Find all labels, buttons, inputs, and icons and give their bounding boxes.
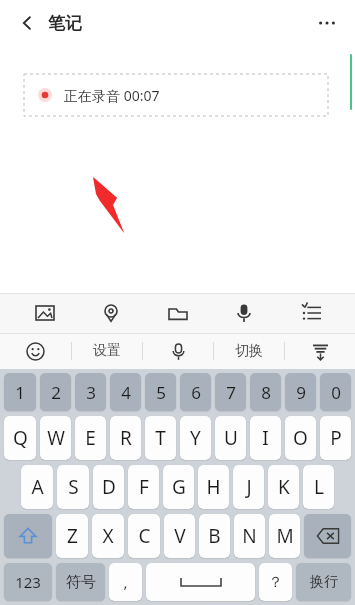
- staticText: 5: [156, 381, 166, 404]
- button[interactable]: I: [250, 416, 281, 460]
- button[interactable]: 符号: [56, 563, 105, 601]
- staticText: 123: [15, 572, 41, 592]
- button[interactable]: J: [233, 465, 264, 509]
- button[interactable]: 切换: [214, 333, 284, 369]
- button[interactable]: K: [268, 465, 299, 509]
- staticText: N: [242, 523, 257, 549]
- staticText: 9: [296, 381, 306, 404]
- staticText: Q: [13, 425, 28, 451]
- button[interactable]: E: [75, 416, 106, 460]
- button[interactable]: 设置: [72, 333, 142, 369]
- button[interactable]: 7: [215, 373, 246, 411]
- button[interactable]: L: [303, 465, 334, 509]
- button[interactable]: M: [269, 514, 300, 558]
- staticText: D: [102, 474, 116, 500]
- button[interactable]: 3: [75, 373, 106, 411]
- button[interactable]: H: [198, 465, 229, 509]
- button[interactable]: 0: [320, 373, 351, 411]
- staticText: V: [174, 523, 186, 549]
- button[interactable]: P: [320, 416, 351, 460]
- button[interactable]: ,: [109, 563, 142, 601]
- button[interactable]: Voice input: [143, 333, 213, 369]
- staticText: I: [262, 425, 269, 451]
- staticText: F: [139, 474, 149, 500]
- button[interactable]: Voice recording: [222, 293, 266, 333]
- button[interactable]: 2: [40, 373, 71, 411]
- staticText: 0: [331, 381, 341, 404]
- staticText: C: [138, 523, 151, 549]
- staticText: U: [224, 425, 238, 451]
- button[interactable]: N: [234, 514, 265, 558]
- button[interactable]: 5: [145, 373, 176, 411]
- button[interactable]: X: [92, 514, 124, 558]
- staticText: H: [206, 474, 221, 500]
- button[interactable]: Backspace: [304, 514, 351, 558]
- button[interactable]: F: [128, 465, 159, 509]
- button[interactable]: W: [40, 416, 71, 460]
- staticText: ？: [268, 573, 283, 592]
- button[interactable]: U: [215, 416, 246, 460]
- button[interactable]: 正在录音 00:07: [24, 74, 328, 116]
- button[interactable]: A: [21, 465, 53, 509]
- staticText: 8: [261, 381, 271, 404]
- button[interactable]: S: [57, 465, 89, 509]
- staticText: M: [276, 523, 294, 549]
- button[interactable]: Space: [146, 563, 255, 601]
- staticText: J: [246, 474, 252, 500]
- button[interactable]: Z: [56, 514, 88, 558]
- button[interactable]: 换行: [296, 563, 351, 601]
- staticText: R: [120, 425, 132, 451]
- button[interactable]: Location: [89, 293, 133, 333]
- button[interactable]: Emoji: [0, 333, 71, 369]
- button[interactable]: Files: [156, 293, 200, 333]
- button[interactable]: C: [128, 514, 160, 558]
- staticText: 设置: [93, 342, 121, 360]
- button[interactable]: More options: [309, 5, 345, 41]
- button[interactable]: B: [199, 514, 230, 558]
- button[interactable]: Checklist: [289, 293, 333, 333]
- staticText: ,: [123, 572, 128, 592]
- staticText: A: [31, 474, 44, 500]
- staticText: K: [278, 474, 290, 500]
- staticText: Z: [67, 523, 78, 549]
- button[interactable]: Q: [4, 416, 36, 460]
- staticText: 2: [51, 381, 61, 404]
- button[interactable]: V: [164, 514, 195, 558]
- button[interactable]: Back: [10, 6, 44, 40]
- staticText: Y: [190, 425, 201, 451]
- staticText: P: [330, 425, 342, 451]
- staticText: 4: [121, 381, 131, 404]
- staticText: E: [85, 425, 96, 451]
- staticText: L: [314, 474, 324, 500]
- button[interactable]: ？: [259, 563, 292, 601]
- staticText: 切换: [235, 342, 263, 360]
- staticText: 符号: [66, 573, 96, 592]
- button[interactable]: 6: [180, 373, 211, 411]
- button[interactable]: Insert image: [23, 293, 67, 333]
- button[interactable]: G: [163, 465, 194, 509]
- staticText: 7: [226, 381, 236, 404]
- button[interactable]: R: [110, 416, 141, 460]
- staticText: G: [172, 474, 186, 500]
- button[interactable]: 9: [285, 373, 316, 411]
- button[interactable]: Shift: [4, 514, 52, 558]
- staticText: 6: [191, 381, 201, 404]
- staticText: 1: [15, 381, 25, 404]
- staticText: X: [102, 523, 114, 549]
- button[interactable]: O: [285, 416, 316, 460]
- button[interactable]: 1: [4, 373, 36, 411]
- button[interactable]: 123: [4, 563, 52, 601]
- button[interactable]: 4: [110, 373, 141, 411]
- staticText: T: [155, 425, 166, 451]
- button[interactable]: Y: [180, 416, 211, 460]
- staticText: O: [293, 425, 308, 451]
- staticText: 笔记: [48, 13, 82, 34]
- button[interactable]: T: [145, 416, 176, 460]
- staticText: 正在录音 00:07: [64, 86, 160, 105]
- button[interactable]: Hide keyboard: [285, 333, 355, 369]
- staticText: 换行: [310, 573, 338, 591]
- staticText: B: [208, 523, 221, 549]
- staticText: 3: [86, 381, 96, 404]
- button[interactable]: 8: [250, 373, 281, 411]
- button[interactable]: D: [93, 465, 124, 509]
